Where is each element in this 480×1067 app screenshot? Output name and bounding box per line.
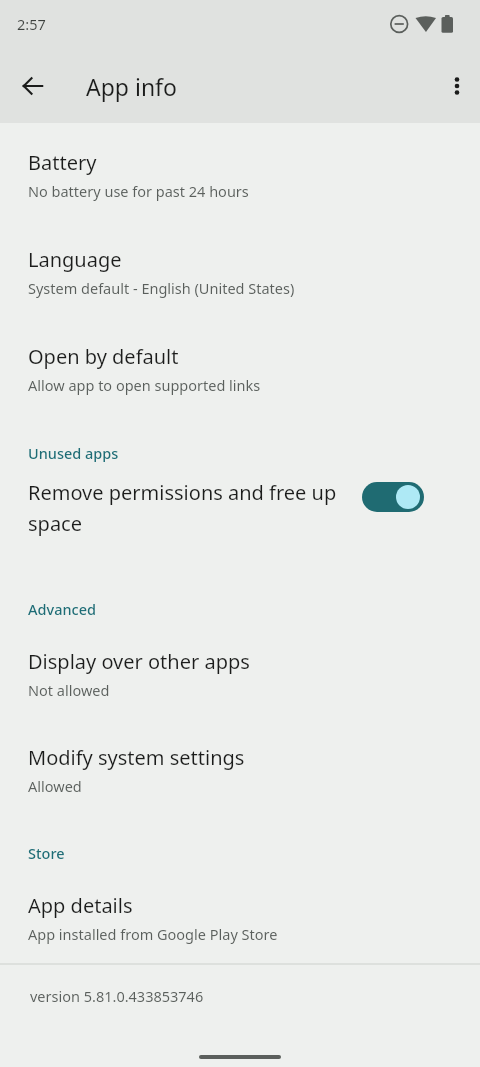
button[interactable]: Language xyxy=(0,201,480,298)
staticText: Battery xyxy=(28,149,97,176)
button[interactable]: Display over other apps xyxy=(0,619,480,700)
button[interactable]: Remove permissions and free up space xyxy=(0,463,480,552)
staticText: Remove permissions and free up space xyxy=(28,479,358,536)
staticText: Allow app to open supported links xyxy=(28,375,261,395)
staticText: 2:57 xyxy=(17,14,46,34)
staticText: System default - English (United States) xyxy=(28,278,295,298)
staticText: Open by default xyxy=(28,343,179,370)
button[interactable]: Battery xyxy=(0,123,480,201)
staticText: Display over other apps xyxy=(28,648,250,675)
staticText: version 5.81.0.433853746 xyxy=(30,986,204,1006)
staticText: Store xyxy=(28,843,456,863)
staticText: No battery use for past 24 hours xyxy=(28,181,249,201)
staticText: App installed from Google Play Store xyxy=(28,924,278,944)
staticText: Unused apps xyxy=(28,443,456,463)
staticText: Modify system settings xyxy=(28,744,245,771)
button[interactable]: Back xyxy=(9,62,57,110)
button[interactable]: Open by default xyxy=(0,298,480,395)
button[interactable]: App details xyxy=(0,863,480,944)
button[interactable]: More options xyxy=(433,62,480,110)
button[interactable]: Modify system settings xyxy=(0,700,480,796)
staticText: Advanced xyxy=(28,599,456,619)
button[interactable]: Remove permissions toggle, on xyxy=(362,482,424,512)
staticText: Not allowed xyxy=(28,680,110,700)
staticText: Language xyxy=(28,246,122,273)
staticText: Allowed xyxy=(28,776,82,796)
staticText: App info xyxy=(86,71,177,102)
staticText: App details xyxy=(28,892,133,919)
